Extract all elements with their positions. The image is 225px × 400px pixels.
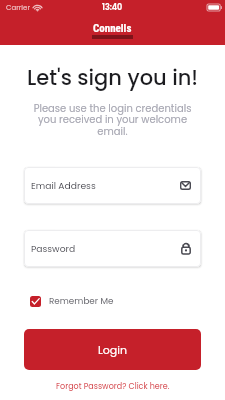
staticText: Let's sign you in!	[0, 63, 225, 92]
button[interactable]: Password	[31, 230, 191, 267]
staticText: Carrier	[6, 3, 31, 13]
staticText: 13:40	[102, 2, 123, 13]
other: Password	[181, 242, 191, 255]
staticText: Login	[98, 342, 127, 357]
button[interactable]: Forgot Password? Click here.	[0, 381, 225, 392]
button[interactable]: Email Address	[31, 167, 191, 204]
button[interactable]: Login	[24, 329, 201, 370]
staticText: Email Address	[31, 179, 96, 192]
staticText: Password	[31, 242, 76, 255]
staticText: Please use the login credentials you rec…	[0, 101, 225, 139]
staticText: Connells	[93, 22, 132, 35]
staticText: Forgot Password? Click here.	[56, 381, 170, 392]
button[interactable]: Remember Me	[30, 295, 114, 307]
other: Email	[180, 181, 191, 190]
staticText: Remember Me	[49, 295, 114, 307]
